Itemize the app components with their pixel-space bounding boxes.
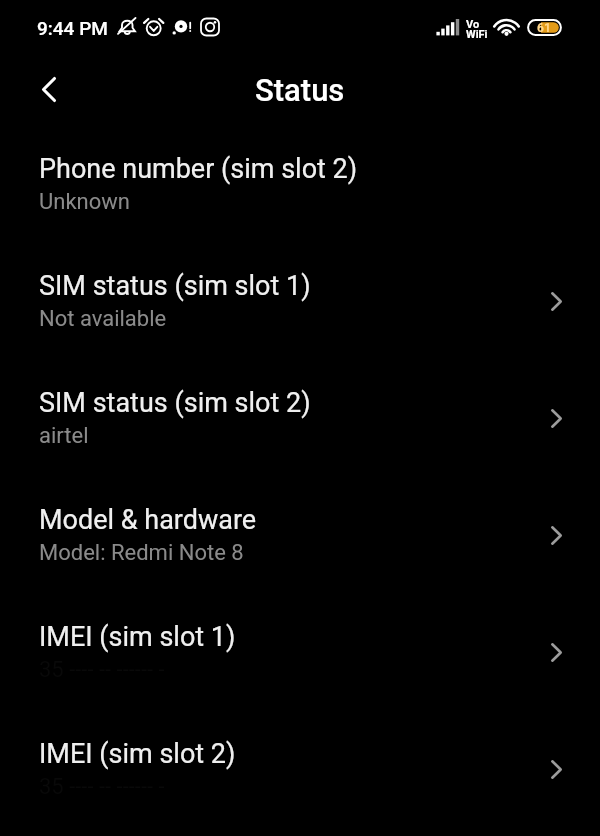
staticText: IMEI (sim slot 2) [39,738,236,770]
button[interactable]: Model & hardware [0,491,600,608]
staticText: Model: Redmi Note 8 [39,540,244,566]
staticText: airtel [39,423,89,449]
button[interactable]: SIM status (sim slot 2) [0,374,600,491]
staticText: 61 [537,21,551,35]
staticText: Vo WiFi [466,18,488,41]
staticText: SIM status (sim slot 1) [39,270,311,302]
staticText: Status [255,72,345,108]
staticText: IMEI (sim slot 1) [39,621,236,653]
button[interactable]: Back [25,65,73,113]
staticText: SIM status (sim slot 2) [39,387,311,419]
staticText: Model & hardware [39,504,257,536]
staticText: 9:44 PM [37,17,108,39]
button[interactable]: Phone number (sim slot 2) [0,140,600,257]
staticText: Phone number (sim slot 2) [39,153,358,185]
staticText: Not available [39,306,167,332]
button[interactable]: IMEI (sim slot 2) [0,725,600,836]
staticText: Unknown [39,189,130,215]
button[interactable]: SIM status (sim slot 1) [0,257,600,374]
button[interactable]: IMEI (sim slot 1) [0,608,600,725]
